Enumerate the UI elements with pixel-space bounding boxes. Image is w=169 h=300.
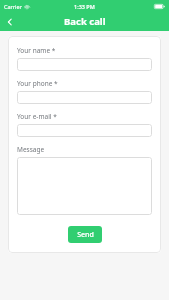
staticText: Carrier xyxy=(4,3,22,10)
staticText: Your e-mail * xyxy=(17,112,57,121)
staticText: Message xyxy=(17,145,45,154)
staticText: Send xyxy=(77,230,94,240)
button[interactable] xyxy=(17,58,152,71)
button[interactable] xyxy=(17,124,152,137)
button[interactable] xyxy=(17,91,152,104)
staticText: Your name * xyxy=(17,46,56,55)
button[interactable] xyxy=(17,157,152,215)
button[interactable]: Send xyxy=(68,226,102,243)
button[interactable]: Back xyxy=(0,12,19,31)
staticText: Your phone * xyxy=(17,79,58,88)
staticText: 1:33 PM xyxy=(74,3,95,10)
staticText: Back call xyxy=(64,15,106,28)
